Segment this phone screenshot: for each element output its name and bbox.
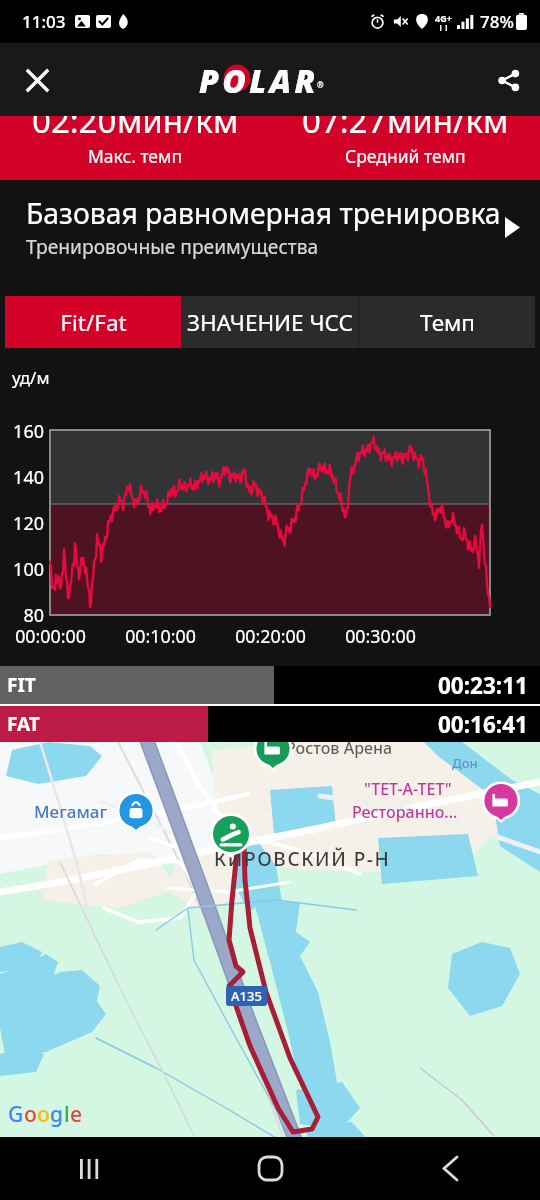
staticText: мин/км	[387, 116, 509, 143]
staticText: 00:00:00	[15, 624, 86, 648]
staticText: уд/м	[12, 366, 50, 389]
staticText: 140	[13, 465, 44, 490]
button[interactable]: Back	[418, 1137, 482, 1200]
staticText: 00:20:00	[235, 624, 306, 648]
staticText: 11:03	[22, 10, 66, 33]
button[interactable]: Close	[17, 60, 57, 100]
staticText: Дон	[452, 754, 478, 772]
button[interactable]: Темп	[359, 296, 535, 348]
staticText: 100	[13, 557, 44, 582]
staticText: 02:20	[32, 116, 117, 143]
staticText: 4G+	[435, 12, 452, 24]
staticText: КИРОВСКИЙ Р-Н	[214, 846, 391, 872]
staticText: Fit/Fat	[60, 307, 127, 338]
staticText: A135	[231, 987, 262, 1005]
staticText: 07:27	[302, 116, 387, 143]
button[interactable]: Recents	[58, 1137, 122, 1200]
staticText: 00:10:00	[125, 624, 196, 648]
button[interactable]: Home	[238, 1137, 302, 1200]
staticText: мин/км	[117, 116, 239, 143]
staticText: G	[8, 1100, 24, 1129]
staticText: 78%	[480, 10, 514, 33]
staticText: Ростов Арена	[286, 742, 393, 759]
staticText: Ресторанно...	[352, 801, 458, 823]
button[interactable]: Ростов Арена	[0, 742, 540, 1137]
staticText: Базовая равномерная тренировка	[26, 194, 501, 233]
staticText: l	[64, 1100, 70, 1129]
staticText: o	[37, 1100, 50, 1129]
button[interactable]: Fit/Fat	[5, 296, 181, 348]
staticText: 00:16:41	[438, 709, 528, 740]
staticText: Мегамаг	[34, 800, 108, 823]
staticText: POLAR	[199, 59, 319, 93]
button[interactable]: ЗНАЧЕНИЕ ЧСС	[182, 296, 358, 348]
staticText: FAT	[7, 711, 40, 737]
staticText: "ТЕТ-А-ТЕТ"	[364, 778, 452, 800]
staticText: ЗНАЧЕНИЕ ЧСС	[187, 307, 353, 338]
staticText: 120	[13, 511, 44, 536]
staticText: Темп	[420, 307, 475, 338]
button[interactable]: Базовая равномерная тренировка	[0, 180, 540, 296]
staticText: 160	[13, 419, 44, 444]
staticText: Макс. темп	[88, 144, 183, 168]
staticText: Тренировочные преимущества	[26, 233, 319, 259]
staticText: e	[70, 1100, 83, 1129]
staticText: Средний темп	[345, 144, 466, 168]
staticText: 00:30:00	[345, 624, 416, 648]
staticText: 80	[23, 603, 44, 628]
staticText: ®	[317, 79, 324, 90]
staticText: 00:23:11	[438, 670, 528, 701]
button[interactable]: Share	[488, 60, 528, 100]
staticText: g	[50, 1100, 64, 1129]
staticText: FIT	[7, 672, 36, 698]
staticText: o	[24, 1100, 37, 1129]
